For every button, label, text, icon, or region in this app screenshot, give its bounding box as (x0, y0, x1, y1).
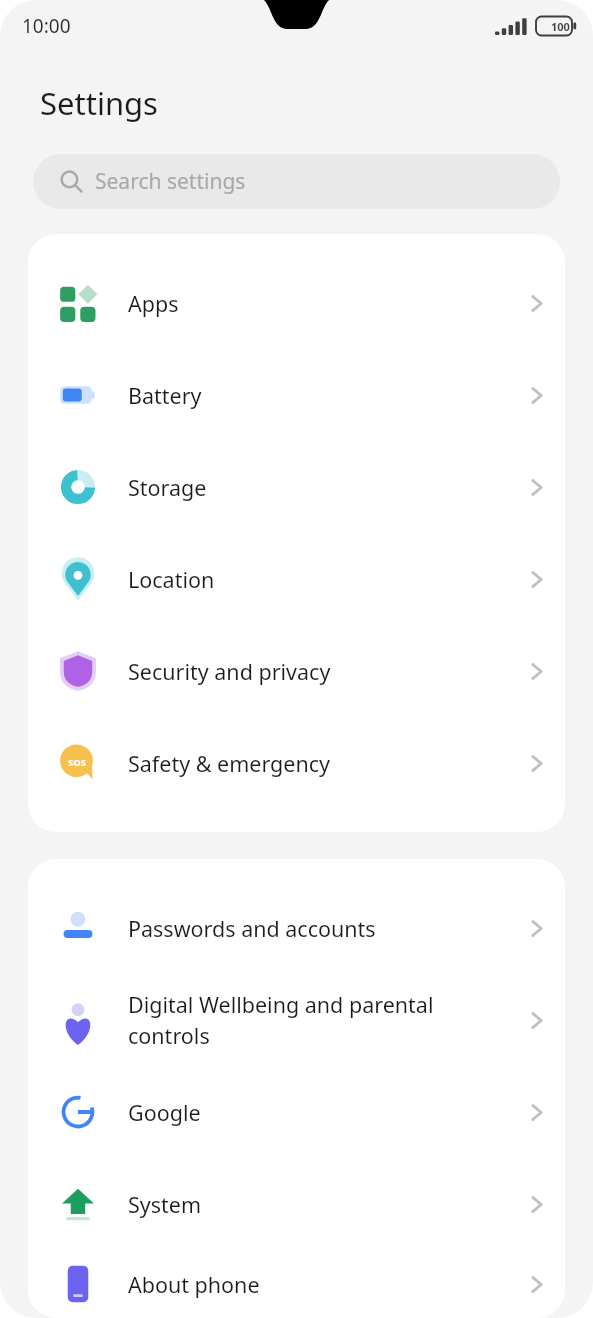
staticText: System (128, 1190, 495, 1219)
staticText: 10:00 (22, 13, 71, 39)
staticText: 100 (551, 19, 570, 34)
staticText: SOS (68, 756, 86, 769)
button[interactable]: Digital Wellbeing and parental controls (28, 974, 565, 1066)
button[interactable]: Search settings (33, 154, 560, 209)
staticText: Apps (128, 289, 495, 318)
button[interactable]: Security and privacy (28, 625, 565, 717)
staticText: Digital Wellbeing and parental controls (128, 990, 495, 1051)
staticText: Settings (40, 82, 158, 124)
button[interactable]: Battery (28, 349, 565, 441)
button[interactable]: About phone (28, 1250, 565, 1318)
button[interactable]: Apps (28, 257, 565, 349)
button[interactable]: Storage (28, 441, 565, 533)
staticText: Location (128, 565, 495, 594)
staticText: Storage (128, 473, 495, 502)
staticText: About phone (128, 1270, 495, 1299)
staticText: Search settings (95, 167, 246, 196)
staticText: Security and privacy (128, 657, 495, 686)
staticText: Passwords and accounts (128, 914, 495, 943)
staticText: Safety & emergency (128, 749, 495, 778)
button[interactable]: System (28, 1158, 565, 1250)
staticText: Google (128, 1098, 495, 1127)
button[interactable]: Location (28, 533, 565, 625)
button[interactable]: SOS (28, 717, 565, 809)
button[interactable]: Passwords and accounts (28, 882, 565, 974)
button[interactable]: Google (28, 1066, 565, 1158)
staticText: Battery (128, 381, 495, 410)
